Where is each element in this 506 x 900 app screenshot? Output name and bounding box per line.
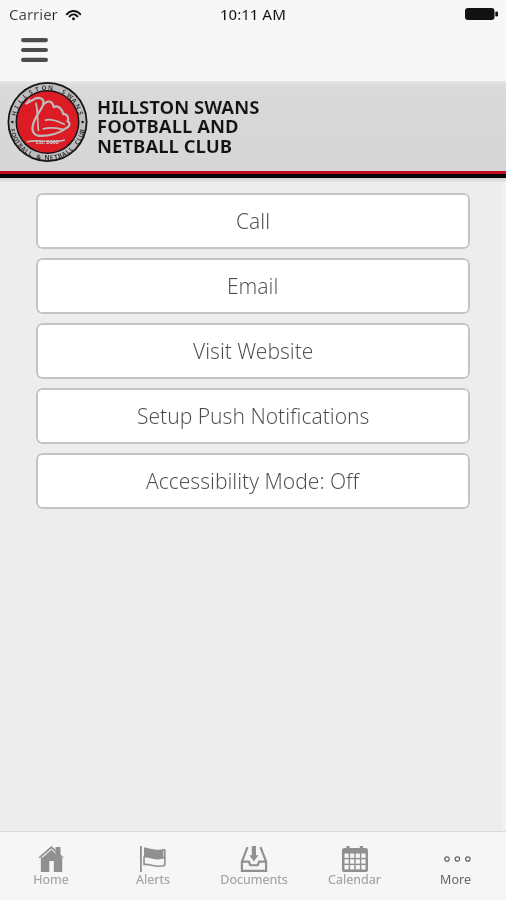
staticText: 10:11 AM [220, 4, 286, 24]
staticText: More [440, 871, 471, 888]
staticText: Alerts [136, 871, 170, 888]
button[interactable]: Menu [8, 30, 60, 70]
button[interactable]: Visit Website [36, 323, 470, 379]
button[interactable]: Email [36, 258, 470, 314]
button[interactable]: Accessibility Mode: Off [36, 453, 470, 509]
button[interactable]: More [405, 836, 506, 897]
button[interactable]: Calendar [304, 836, 405, 897]
staticText: HILLSTON SWANS FOOTBALL AND NETBALL CLUB [97, 94, 260, 159]
staticText: Carrier [9, 4, 58, 24]
button[interactable]: Call [36, 193, 470, 249]
staticText: Calendar [328, 871, 381, 888]
staticText: Documents [220, 871, 288, 888]
staticText: Visit Website [193, 337, 314, 366]
staticText: Home [33, 871, 69, 888]
button[interactable]: Alerts [102, 836, 203, 897]
button[interactable]: Home [0, 836, 102, 897]
button[interactable]: Documents [203, 836, 304, 897]
button[interactable]: Setup Push Notifications [36, 388, 470, 444]
staticText: Setup Push Notifications [137, 402, 370, 431]
staticText: Call [236, 207, 271, 236]
staticText: Accessibility Mode: Off [146, 467, 360, 496]
staticText: Email [227, 272, 279, 301]
